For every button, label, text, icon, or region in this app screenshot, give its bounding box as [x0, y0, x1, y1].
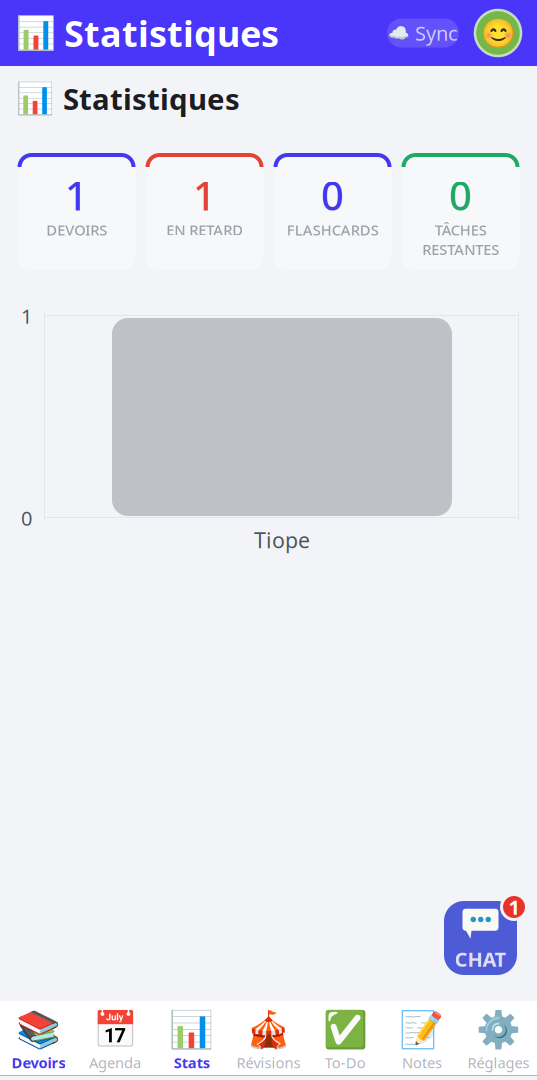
button[interactable]: ✅	[307, 1000, 384, 1076]
staticText: Révisions	[236, 1053, 300, 1072]
staticText: To-Do	[325, 1053, 366, 1072]
staticText: EN RETARD	[166, 220, 243, 239]
staticText: 📊	[169, 1009, 214, 1050]
staticText: 0	[449, 168, 472, 221]
staticText: Stats	[174, 1053, 210, 1072]
button[interactable]: CHAT	[444, 901, 517, 975]
button[interactable]: 0	[273, 153, 391, 270]
button[interactable]: Profil	[475, 10, 521, 56]
button[interactable]: 1	[17, 153, 135, 270]
staticText: Statistiques	[64, 9, 279, 57]
button[interactable]: 📊	[153, 1000, 230, 1076]
staticText: Statistiques	[63, 79, 240, 118]
staticText: 📊	[16, 81, 54, 116]
staticText: 0	[321, 168, 344, 221]
staticText: 1	[65, 168, 88, 221]
staticText: ⚙️	[476, 1009, 521, 1050]
staticText: 📊	[16, 15, 56, 51]
button[interactable]: 1	[145, 153, 263, 270]
staticText: 1	[21, 303, 32, 329]
staticText: ☁️	[388, 23, 410, 43]
staticText: 🎪	[246, 1009, 291, 1050]
staticText: Sync	[415, 20, 458, 46]
staticText: Notes	[402, 1053, 442, 1072]
staticText: Réglages	[468, 1053, 530, 1072]
staticText: 1	[193, 168, 216, 221]
staticText: Devoirs	[11, 1053, 65, 1072]
staticText: 📝	[399, 1009, 444, 1050]
staticText: 📚	[16, 1009, 61, 1050]
button[interactable]: 📅	[77, 1000, 153, 1076]
staticText: Agenda	[89, 1053, 141, 1072]
staticText: CHAT	[454, 946, 506, 972]
button[interactable]: 📝	[384, 1000, 460, 1076]
button[interactable]: ☁️	[387, 18, 459, 47]
staticText: 😊	[480, 17, 515, 49]
staticText: 1	[508, 894, 519, 920]
staticText: 0	[21, 505, 32, 531]
staticText: FLASHCARDS	[286, 220, 378, 239]
button[interactable]: ⚙️	[460, 1000, 537, 1076]
button[interactable]: 0	[401, 153, 519, 270]
staticText: TÂCHES RESTANTES	[422, 220, 499, 259]
button[interactable]: 📚	[0, 1000, 77, 1076]
staticText: DEVOIRS	[46, 220, 107, 239]
staticText: Tiope	[254, 526, 310, 554]
staticText: 📅	[93, 1009, 138, 1050]
staticText: ✅	[323, 1009, 368, 1050]
button[interactable]: 🎪	[230, 1000, 307, 1076]
